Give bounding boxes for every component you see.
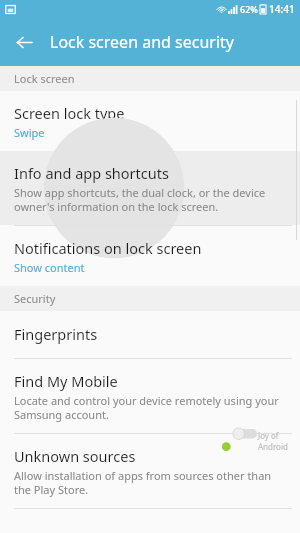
button[interactable]: Info and app shortcuts — [0, 151, 300, 225]
staticText: Info and app shortcuts — [14, 163, 169, 183]
button[interactable]: Notifications on lock screen — [0, 226, 300, 286]
staticText: Security — [14, 291, 56, 306]
button[interactable]: Screen lock type — [0, 91, 300, 151]
staticText: 14:41 — [269, 2, 295, 16]
staticText: 62% — [240, 3, 258, 15]
button[interactable]: Fingerprints — [0, 311, 300, 358]
staticText: Joy of — [258, 430, 279, 441]
button[interactable]: Back — [8, 26, 40, 58]
staticText: Find My Mobile — [14, 371, 118, 391]
staticText: Lock screen and security — [50, 31, 234, 53]
staticText: Lock screen — [14, 71, 75, 86]
staticText: Android — [258, 441, 288, 452]
staticText: Screen lock type — [14, 103, 125, 123]
staticText: Notifications on lock screen — [14, 238, 202, 258]
staticText: Locate and control your device remotely … — [14, 393, 286, 422]
staticText: Swipe — [14, 125, 45, 140]
staticText: Show app shortcuts, the dual clock, or t… — [14, 185, 286, 214]
staticText: Unknown sources — [14, 446, 136, 466]
button[interactable]: Find My Mobile — [0, 359, 300, 433]
button[interactable]: Unknown sources — [0, 434, 300, 508]
staticText: Fingerprints — [14, 324, 98, 344]
staticText: Allow installation of apps from sources … — [14, 468, 286, 497]
staticText: Show content — [14, 260, 85, 275]
